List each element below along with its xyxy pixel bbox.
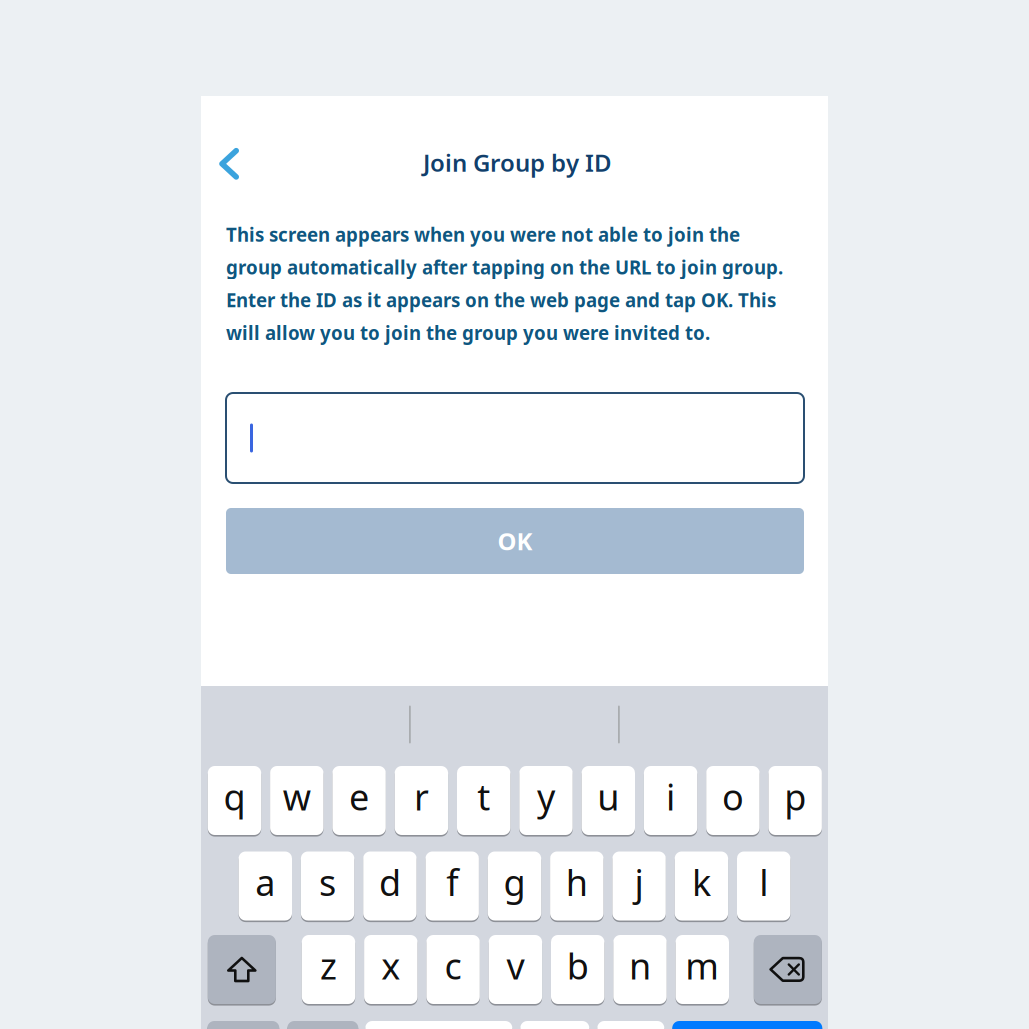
staticText: i	[666, 773, 675, 820]
staticText: q	[223, 773, 245, 820]
button[interactable]: x	[364, 935, 417, 1004]
staticText: n	[629, 942, 651, 989]
button[interactable]: n	[613, 935, 667, 1004]
staticText: h	[566, 858, 588, 906]
staticText: v	[506, 942, 524, 989]
button[interactable]: f	[425, 851, 479, 920]
staticText: s	[319, 858, 336, 906]
button[interactable]: Numbers	[207, 1021, 279, 1029]
staticText: d	[379, 858, 401, 906]
staticText: r	[414, 773, 429, 820]
button[interactable]: u	[582, 766, 635, 835]
staticText: j	[635, 858, 644, 906]
staticText: g	[503, 858, 525, 906]
staticText: w	[283, 773, 311, 820]
button[interactable]: Shift	[208, 935, 276, 1004]
staticText: k	[692, 858, 711, 906]
button[interactable]: v	[489, 935, 542, 1004]
button[interactable]: y	[519, 766, 573, 835]
staticText: p	[784, 773, 806, 820]
staticText: l	[759, 858, 768, 906]
button[interactable]: z	[302, 935, 355, 1004]
staticText: e	[349, 773, 369, 820]
button[interactable]: Back	[200, 133, 258, 195]
staticText: f	[446, 858, 458, 906]
button[interactable]: Emoji	[287, 1021, 358, 1029]
button[interactable]: r	[395, 766, 448, 835]
button[interactable]: k	[675, 851, 728, 920]
button[interactable]: g	[488, 851, 541, 920]
button[interactable]: Space	[365, 1021, 512, 1029]
button[interactable]: a	[239, 851, 292, 920]
button[interactable]: w	[270, 766, 323, 835]
button[interactable]: s	[301, 851, 354, 920]
button[interactable]: q	[208, 766, 261, 835]
button[interactable]: Period	[520, 1021, 589, 1029]
button[interactable]: p	[768, 766, 822, 835]
button[interactable]: t	[457, 766, 510, 835]
button[interactable]: h	[550, 851, 603, 920]
button[interactable]: i	[644, 766, 697, 835]
button[interactable]: o	[706, 766, 760, 835]
staticText: b	[567, 942, 589, 989]
button[interactable]: j	[612, 851, 666, 920]
staticText: o	[722, 773, 744, 820]
staticText: x	[381, 942, 400, 989]
button[interactable]: m	[676, 935, 729, 1004]
button[interactable]: Go	[672, 1021, 822, 1029]
staticText: Join Group by ID	[423, 147, 612, 178]
staticText: a	[255, 858, 275, 906]
staticText: t	[477, 773, 490, 820]
staticText: This screen appears when you were not ab…	[226, 222, 783, 345]
button[interactable]: d	[363, 851, 417, 920]
button[interactable]: OK	[226, 508, 804, 574]
staticText: m	[685, 942, 719, 989]
staticText: y	[537, 773, 555, 820]
button[interactable]: l	[737, 851, 790, 920]
button[interactable]: e	[332, 766, 386, 835]
button[interactable]: c	[426, 935, 480, 1004]
staticText: u	[597, 773, 619, 820]
button[interactable]: Slash	[597, 1021, 664, 1029]
staticText: c	[445, 942, 462, 989]
button[interactable]: Delete	[754, 935, 822, 1004]
staticText: OK	[497, 525, 532, 557]
staticText: z	[320, 942, 337, 989]
button[interactable]: b	[551, 935, 604, 1004]
